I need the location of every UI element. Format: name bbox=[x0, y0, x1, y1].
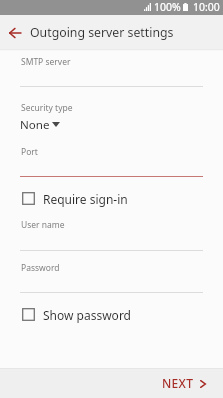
staticText: Show password bbox=[43, 307, 131, 323]
button[interactable]: Show password bbox=[0, 304, 223, 324]
staticText: 10:00 bbox=[193, 0, 220, 14]
button[interactable]: None bbox=[0, 116, 223, 134]
staticText: 100% bbox=[154, 0, 181, 14]
staticText: Password bbox=[21, 262, 60, 274]
staticText: NEXT bbox=[162, 375, 194, 391]
staticText: Security type bbox=[21, 102, 73, 114]
staticText: Outgoing server settings bbox=[30, 24, 174, 41]
staticText: Require sign-in bbox=[43, 191, 128, 207]
staticText: SMTP server bbox=[21, 56, 71, 68]
staticText: Port bbox=[21, 146, 38, 158]
button[interactable]: NEXT bbox=[146, 371, 223, 397]
staticText: User name bbox=[21, 219, 65, 231]
button[interactable]: Back bbox=[3, 20, 27, 44]
button[interactable]: Require sign-in bbox=[0, 188, 223, 208]
staticText: None bbox=[20, 117, 50, 133]
